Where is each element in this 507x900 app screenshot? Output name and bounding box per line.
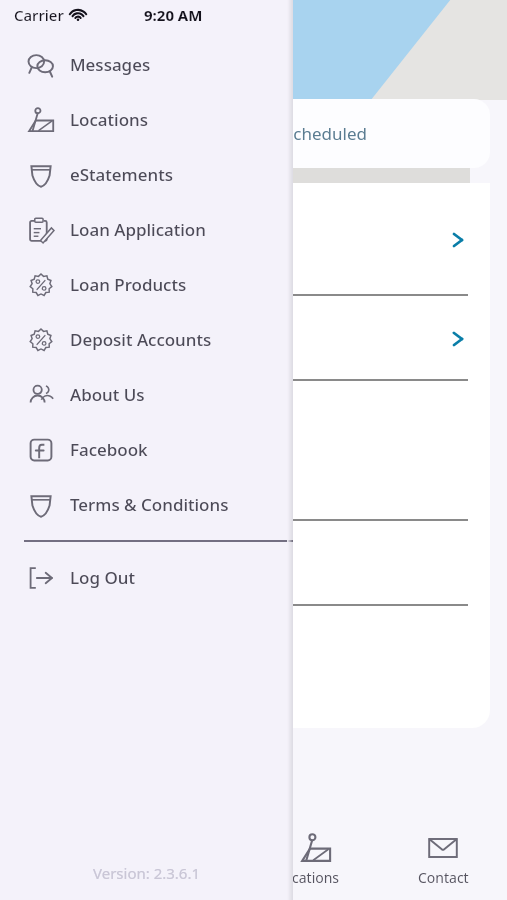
staticText: About Us <box>70 383 145 406</box>
button[interactable]: Rates <box>0 312 293 367</box>
button[interactable]: Locations <box>0 92 293 147</box>
other: Log Out <box>28 565 54 591</box>
staticText: Contact <box>418 868 469 887</box>
button[interactable] <box>0 381 490 521</box>
other: Locations <box>28 107 54 133</box>
button[interactable] <box>0 99 217 168</box>
other: Shield <box>28 492 54 518</box>
button[interactable]: Rates <box>0 257 293 312</box>
staticText: eStatements <box>70 163 173 186</box>
other: Shield <box>28 162 54 188</box>
staticText: Deposit Accounts <box>70 328 212 351</box>
staticText: Scheduled <box>284 122 367 145</box>
staticText: Version: 2.3.6.1 <box>0 863 293 883</box>
staticText: 9:20 AM <box>144 5 203 25</box>
button[interactable]: Open <box>0 296 490 381</box>
other: About Us <box>28 382 54 408</box>
other: Contact <box>428 833 458 863</box>
button[interactable]: Shield <box>0 477 293 532</box>
other: Rates <box>28 327 54 353</box>
other: Locations <box>301 833 331 863</box>
staticText: Locations <box>70 108 148 131</box>
staticText: Log Out <box>70 566 135 589</box>
button[interactable]: Scheduled <box>217 99 434 168</box>
staticText: Messages <box>70 53 151 76</box>
button[interactable]: About Us <box>0 367 293 422</box>
button[interactable]: Open <box>0 183 490 296</box>
button[interactable]: Contact <box>379 820 507 900</box>
other: Messages <box>28 52 54 78</box>
button[interactable]: Log Out <box>0 550 293 605</box>
staticText: Terms & Conditions <box>70 493 229 516</box>
button[interactable]: Facebook <box>0 422 293 477</box>
other: Rates <box>28 272 54 298</box>
button[interactable]: Locations <box>252 820 379 900</box>
staticText: Carrier <box>14 5 64 25</box>
staticText: Loan Products <box>70 273 187 296</box>
button[interactable] <box>0 521 490 606</box>
staticText: Facebook <box>70 438 148 461</box>
other: Open <box>448 329 468 349</box>
staticText: cations <box>292 868 340 887</box>
other: Facebook <box>28 437 54 463</box>
other: Open <box>448 230 468 250</box>
staticText: Loan Application <box>70 218 206 241</box>
button[interactable]: Messages <box>0 37 293 92</box>
button[interactable]: Shield <box>0 147 293 202</box>
other: Loan Application <box>28 217 54 243</box>
button[interactable]: Loan Application <box>0 202 293 257</box>
